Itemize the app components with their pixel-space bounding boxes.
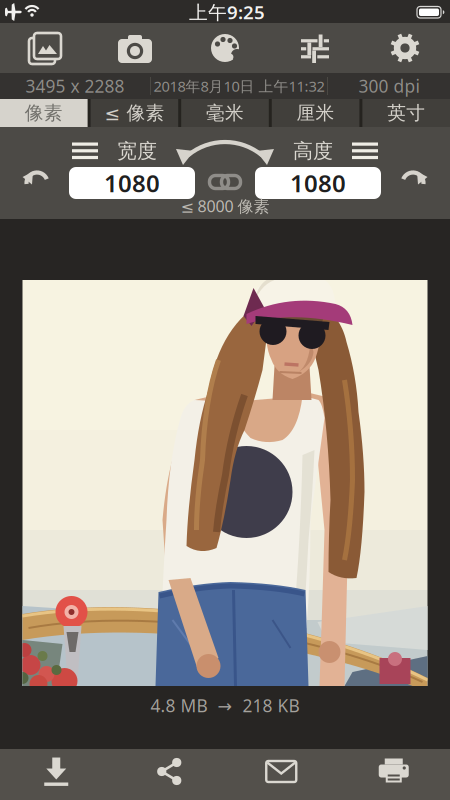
button[interactable] bbox=[225, 749, 337, 800]
button[interactable] bbox=[112, 749, 225, 800]
button[interactable] bbox=[72, 142, 98, 159]
button[interactable] bbox=[270, 23, 360, 73]
staticText: 英寸 bbox=[387, 101, 425, 124]
staticText: 3495 x 2288 bbox=[25, 74, 124, 97]
staticText: 宽度 bbox=[117, 139, 157, 163]
staticText: 1080 bbox=[104, 167, 160, 199]
staticText: 1080 bbox=[290, 167, 346, 199]
button[interactable]: 像素 bbox=[0, 99, 88, 127]
button[interactable] bbox=[180, 23, 270, 73]
button[interactable] bbox=[208, 170, 242, 194]
button[interactable] bbox=[337, 749, 450, 800]
button[interactable]: 1080 bbox=[255, 167, 381, 199]
button[interactable] bbox=[360, 23, 450, 73]
button[interactable] bbox=[352, 142, 378, 159]
staticText: 4.8 MB → 218 KB bbox=[150, 694, 299, 717]
button[interactable]: ≤ 像素 bbox=[91, 99, 178, 127]
staticText: 毫米 bbox=[206, 101, 244, 124]
staticText: ≤ 8000 像素 bbox=[180, 195, 269, 217]
staticText: ≤ 像素 bbox=[104, 101, 164, 124]
button[interactable] bbox=[0, 23, 90, 73]
staticText: 2018年8月10日 上午11:32 bbox=[153, 76, 324, 96]
staticText: 高度 bbox=[293, 139, 333, 163]
button[interactable]: 英寸 bbox=[362, 99, 450, 127]
button[interactable]: 厘米 bbox=[272, 99, 359, 127]
staticText: 像素 bbox=[25, 101, 63, 124]
button[interactable]: 1080 bbox=[69, 167, 195, 199]
button[interactable]: 毫米 bbox=[181, 99, 269, 127]
button[interactable] bbox=[0, 749, 112, 800]
button[interactable] bbox=[20, 165, 54, 199]
button[interactable] bbox=[396, 165, 430, 199]
staticText: 厘米 bbox=[297, 101, 335, 124]
staticText: 300 dpi bbox=[358, 74, 419, 97]
staticText: 上午9:25 bbox=[189, 0, 265, 24]
button[interactable] bbox=[90, 23, 180, 73]
